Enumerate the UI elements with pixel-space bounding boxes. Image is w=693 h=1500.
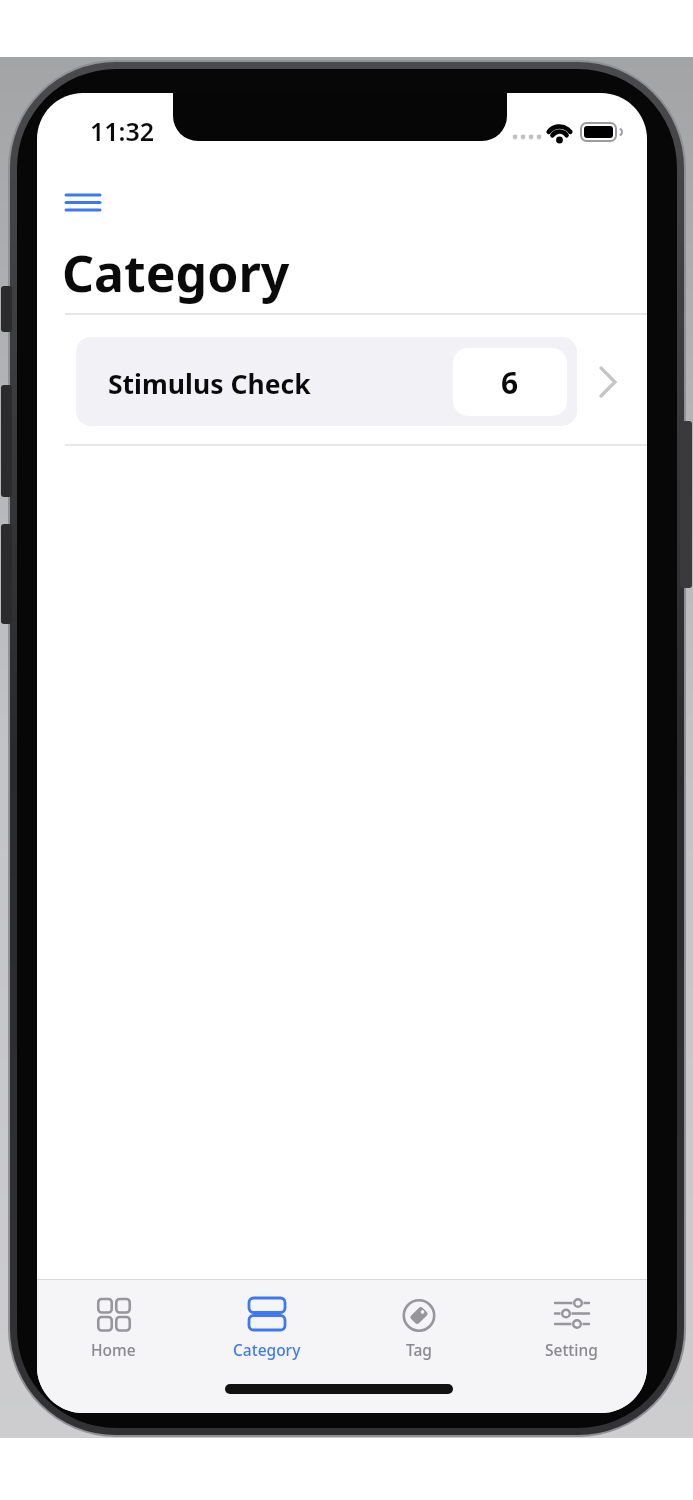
staticText: Tag — [406, 1339, 432, 1360]
button[interactable]: Category — [190, 1283, 343, 1375]
button[interactable]: Setting — [495, 1283, 647, 1375]
staticText: Home — [91, 1339, 136, 1360]
staticText: Stimulus Check — [108, 366, 311, 402]
button[interactable] — [63, 188, 105, 216]
staticText: Setting — [545, 1339, 598, 1360]
staticText: Category — [62, 239, 290, 307]
button[interactable]: Home — [37, 1283, 190, 1375]
staticText: 6 — [501, 362, 519, 403]
staticText: 11:32 — [90, 114, 155, 148]
button[interactable]: Stimulus Check — [76, 337, 577, 426]
button[interactable]: Tag — [342, 1283, 495, 1375]
staticText: Category — [233, 1339, 301, 1360]
